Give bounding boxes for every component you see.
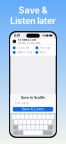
staticText: More: [39, 51, 45, 54]
staticText: Save &: [18, 5, 47, 15]
button[interactable]: Copy Link: [10, 45, 33, 50]
staticText: Save & Listen: [22, 108, 44, 111]
staticText: Add a note…: [14, 102, 30, 105]
staticText: Save to Files: [17, 51, 32, 54]
staticText: Copy Link: [17, 46, 29, 49]
button[interactable]: Add Tag: [33, 45, 56, 50]
button[interactable]: Save & Listen: [13, 107, 53, 112]
button[interactable]: More: [33, 50, 56, 55]
staticText: Save to Scuttle: [21, 96, 45, 100]
button[interactable]: Save to Files: [10, 50, 33, 55]
staticText: Add Tag: [39, 46, 50, 49]
staticText: 9:41: [13, 33, 19, 38]
staticText: nytimes.com: [18, 38, 36, 41]
staticText: The best of long reads: [18, 42, 40, 44]
staticText: Listen later: [10, 15, 56, 26]
